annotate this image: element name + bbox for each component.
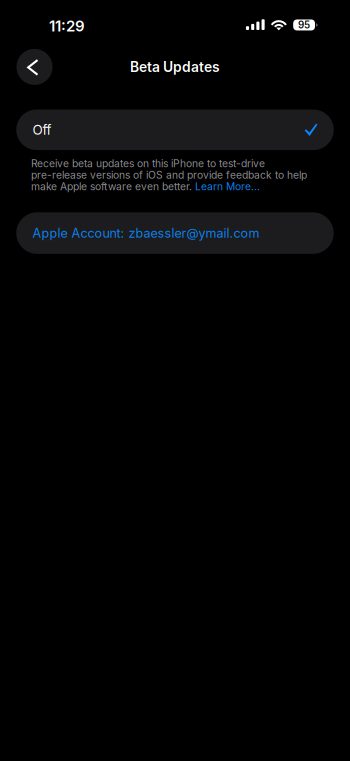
staticText: Receive beta updates on this iPhone to t… xyxy=(31,157,265,170)
staticText: 11:29 xyxy=(49,17,85,35)
staticText: make Apple software even better. xyxy=(31,180,192,193)
button[interactable]: Off xyxy=(16,109,334,150)
button[interactable]: Back xyxy=(16,49,52,85)
button[interactable]: Learn More... xyxy=(192,180,260,193)
staticText: 95 xyxy=(298,19,310,31)
staticText: Learn More... xyxy=(192,180,260,193)
button[interactable]: Apple Account: zbaessler@ymail.com xyxy=(16,212,334,254)
staticText: pre-release versions of iOS and provide … xyxy=(31,169,307,181)
staticText: Beta Updates xyxy=(130,58,220,75)
staticText: Apple Account: zbaessler@ymail.com xyxy=(33,225,260,241)
staticText: Off xyxy=(33,122,52,138)
